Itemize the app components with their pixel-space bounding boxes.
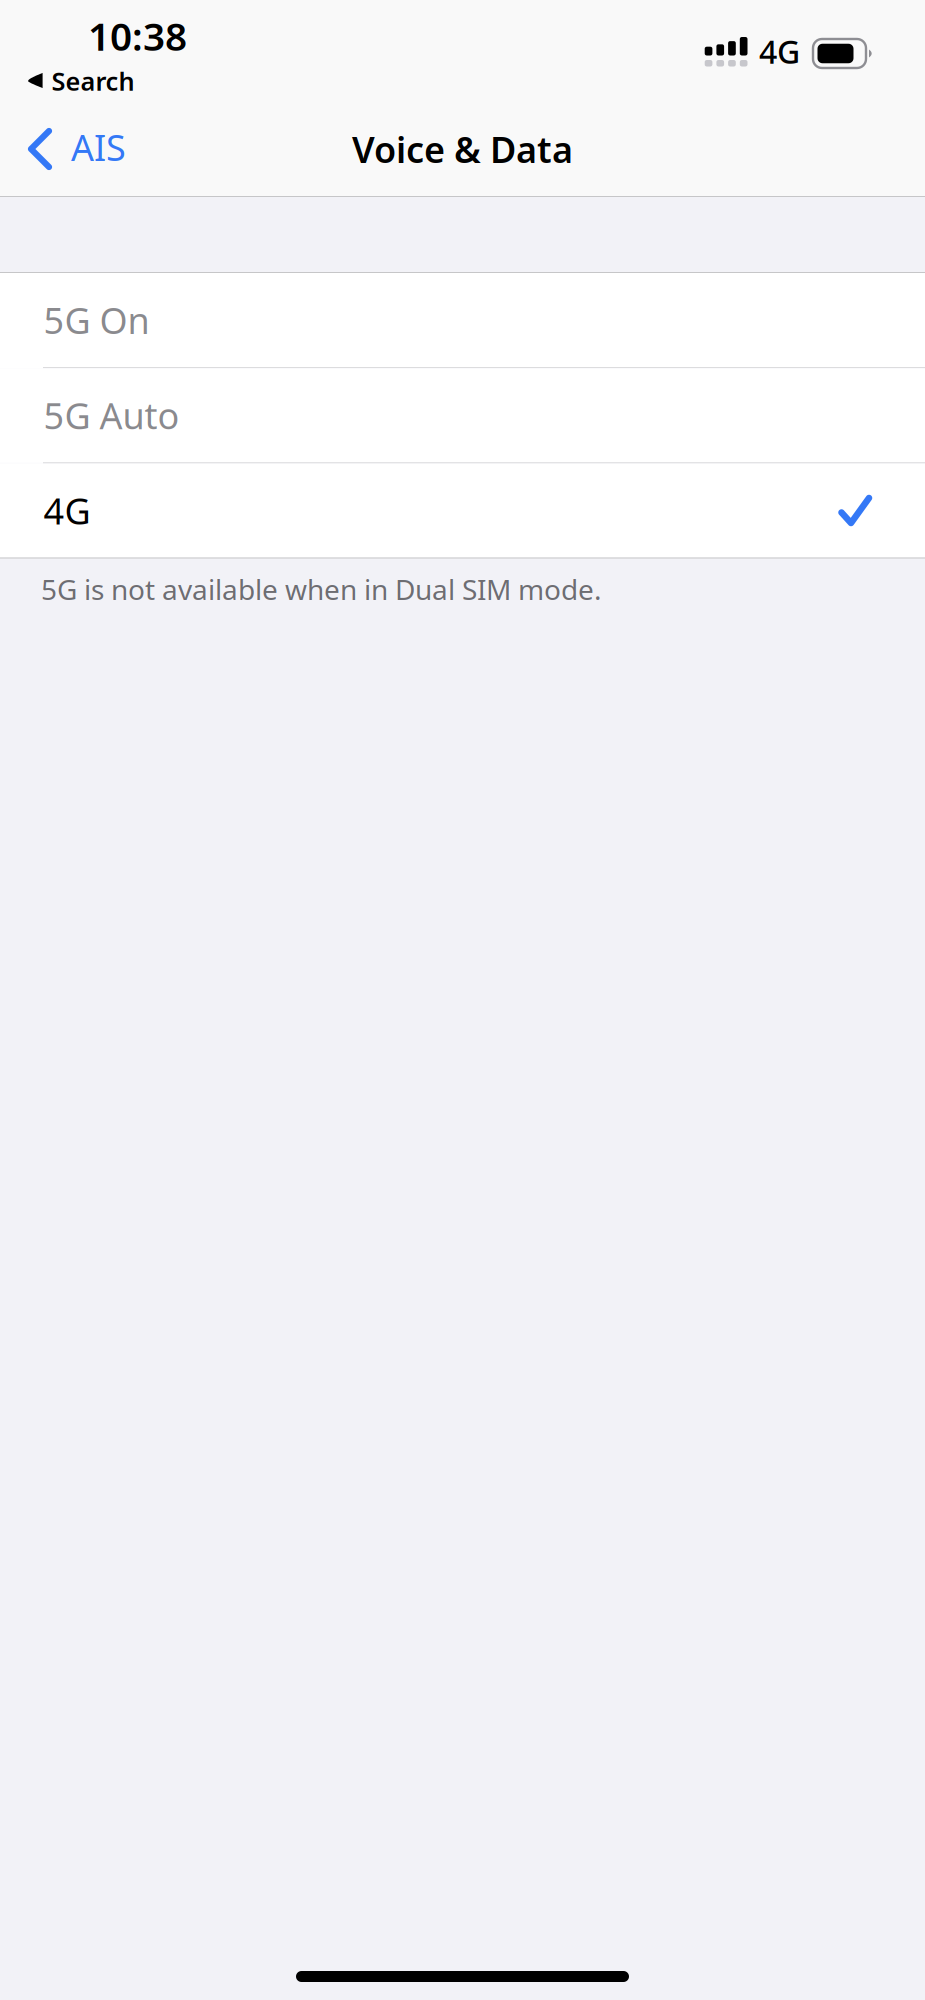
button[interactable]: 5G Auto [0,368,925,462]
staticText: 5G On [43,296,149,344]
button[interactable]: 4G [0,463,925,557]
button[interactable]: Back to Search [0,64,149,98]
button[interactable]: AIS [0,98,146,196]
staticText: Search [52,64,135,98]
button[interactable]: 5G On [0,273,925,367]
staticText: 4G [43,487,90,534]
staticText: 4G [759,30,800,72]
staticText: AIS [71,123,126,171]
staticText: 5G Auto [43,391,179,439]
staticText: 10:38 [88,10,187,61]
staticText: 5G is not available when in Dual SIM mod… [41,570,602,608]
staticText: Voice & Data [352,125,573,173]
